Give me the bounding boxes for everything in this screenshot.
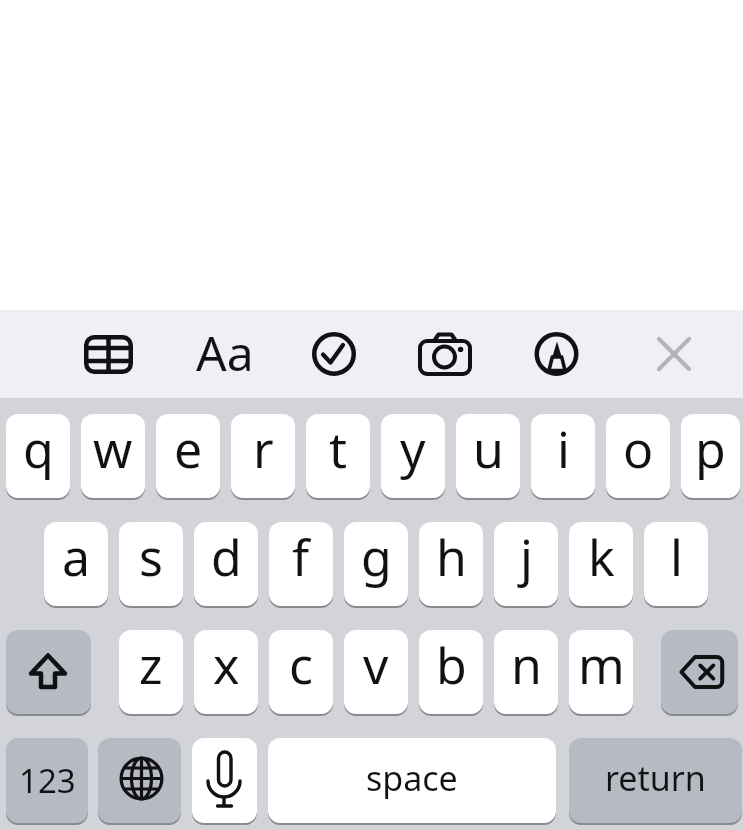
button[interactable]: a [44, 522, 108, 608]
staticText: u [473, 415, 504, 483]
button[interactable]: v [344, 630, 408, 716]
staticText: m [578, 631, 625, 699]
button[interactable]: h [419, 522, 483, 608]
button[interactable]: space [268, 738, 556, 825]
button[interactable]: u [456, 414, 520, 500]
button[interactable]: m [569, 630, 633, 716]
button[interactable]: n [494, 630, 558, 716]
button[interactable]: e [156, 414, 220, 500]
button[interactable]: r [231, 414, 295, 500]
staticText: q [23, 415, 54, 483]
button[interactable]: o [606, 414, 670, 500]
staticText: c [289, 631, 313, 699]
button[interactable]: l [644, 522, 708, 608]
staticText: l [670, 523, 683, 591]
button[interactable]: z [119, 630, 183, 716]
button[interactable] [192, 738, 257, 825]
button[interactable] [78, 328, 139, 380]
button[interactable]: 123 [6, 738, 88, 825]
button[interactable] [306, 326, 362, 382]
staticText: t [329, 415, 348, 483]
staticText: Aa [196, 320, 254, 376]
button[interactable] [6, 630, 91, 716]
button[interactable]: b [419, 630, 483, 716]
staticText: 123 [19, 758, 76, 803]
button[interactable] [661, 630, 738, 716]
staticText: a [62, 523, 91, 591]
button[interactable]: k [569, 522, 633, 608]
staticText: v [363, 631, 389, 699]
staticText: y [400, 415, 426, 483]
staticText: s [139, 523, 163, 591]
staticText: i [557, 415, 570, 483]
staticText: d [211, 523, 242, 591]
staticText: z [139, 631, 163, 699]
staticText: k [588, 523, 615, 591]
staticText: j [520, 523, 533, 591]
button[interactable]: i [531, 414, 595, 500]
button[interactable]: y [381, 414, 445, 500]
staticText: b [436, 631, 467, 699]
staticText: e [174, 415, 203, 483]
staticText: r [253, 415, 274, 483]
button[interactable]: j [494, 522, 558, 608]
button[interactable]: Aa [190, 320, 260, 376]
button[interactable] [650, 326, 698, 382]
button[interactable]: f [269, 522, 333, 608]
button[interactable]: w [81, 414, 145, 500]
staticText: w [93, 415, 133, 483]
button[interactable]: p [681, 414, 740, 500]
button[interactable]: c [269, 630, 333, 716]
staticText: x [213, 631, 240, 699]
button[interactable]: s [119, 522, 183, 608]
button[interactable]: q [6, 414, 70, 500]
button[interactable]: g [344, 522, 408, 608]
staticText: f [292, 523, 310, 591]
staticText: return [605, 755, 706, 801]
button[interactable] [414, 326, 476, 382]
button[interactable] [98, 738, 181, 825]
staticText: h [436, 523, 467, 591]
button[interactable]: d [194, 522, 258, 608]
button[interactable]: return [569, 738, 742, 825]
button[interactable]: x [194, 630, 258, 716]
button[interactable] [528, 326, 585, 382]
staticText: p [695, 415, 726, 483]
staticText: g [361, 523, 392, 591]
staticText: space [366, 755, 458, 801]
staticText: o [623, 415, 654, 483]
button[interactable]: t [306, 414, 370, 500]
staticText: n [511, 631, 542, 699]
